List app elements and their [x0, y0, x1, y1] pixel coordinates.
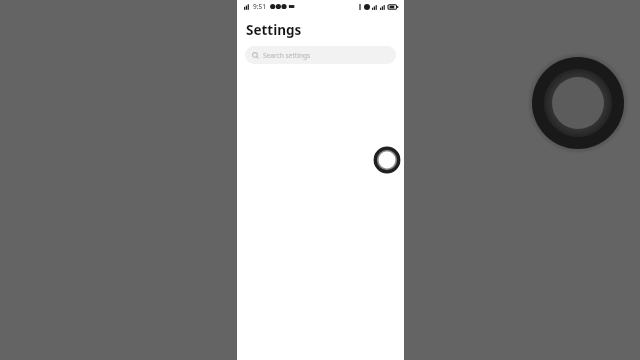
staticText: 9:51 [253, 2, 267, 11]
button[interactable]: Search settings [245, 46, 396, 64]
staticText: Settings [246, 21, 302, 39]
staticText: Search settings [263, 51, 311, 60]
